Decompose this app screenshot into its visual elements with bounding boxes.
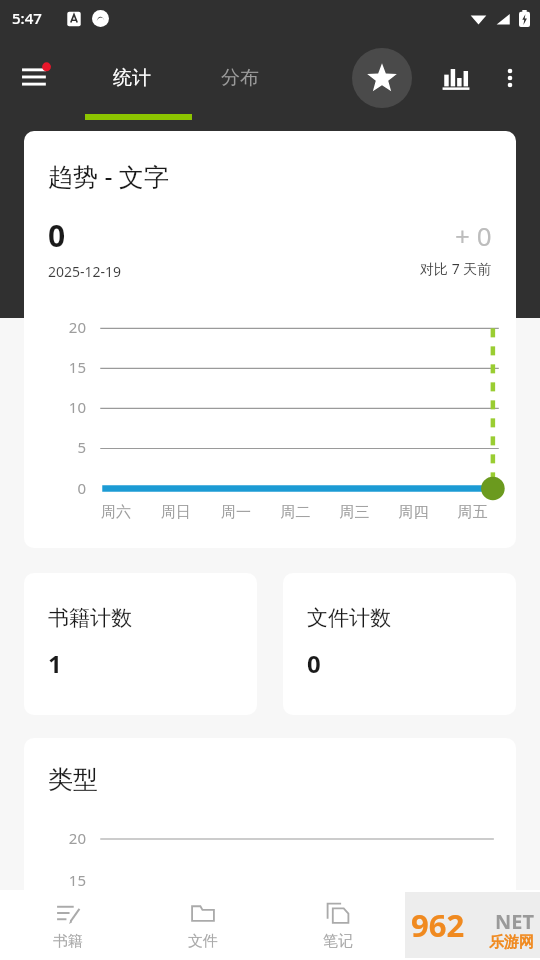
staticText: + 0 bbox=[455, 218, 492, 253]
button[interactable]: Favorites bbox=[352, 48, 412, 108]
staticText: 周三 bbox=[325, 503, 384, 522]
staticText: 类型 bbox=[48, 764, 98, 795]
staticText: 15 bbox=[24, 870, 86, 890]
staticText: 0 bbox=[24, 478, 86, 498]
button[interactable]: Open navigation menu bbox=[14, 55, 60, 101]
staticText: 2025-12-19 bbox=[48, 262, 122, 281]
button[interactable]: 分布 bbox=[186, 36, 294, 120]
staticText: 周日 bbox=[146, 503, 206, 522]
staticText: 分布 bbox=[221, 66, 259, 90]
staticText: 周五 bbox=[443, 503, 502, 522]
button[interactable]: 统计 bbox=[78, 36, 186, 120]
button[interactable]: 书籍 bbox=[0, 890, 135, 960]
staticText: 周二 bbox=[266, 503, 325, 522]
staticText: 0 bbox=[48, 215, 66, 256]
staticText: 书籍 bbox=[53, 932, 83, 951]
staticText: 0 bbox=[307, 647, 321, 680]
staticText: 文件 bbox=[188, 932, 218, 951]
staticText: 笔记 bbox=[323, 932, 353, 951]
button[interactable]: 类型 bbox=[24, 738, 516, 960]
staticText: 对比 7 天前 bbox=[420, 259, 492, 278]
staticText: 20 bbox=[24, 828, 86, 848]
staticText: 周一 bbox=[206, 503, 266, 522]
staticText: 周六 bbox=[86, 503, 146, 522]
button[interactable]: 文件计数 bbox=[283, 573, 516, 715]
button[interactable]: 趋势 - 文字 bbox=[24, 131, 516, 548]
staticText: 文件计数 bbox=[307, 605, 391, 631]
staticText: 5:47 bbox=[12, 8, 42, 28]
button[interactable]: 笔记 bbox=[270, 890, 405, 960]
button[interactable]: 书籍计数 bbox=[24, 573, 257, 715]
staticText: 20 bbox=[24, 317, 86, 337]
button[interactable]: More options bbox=[486, 54, 534, 102]
staticText: 10 bbox=[24, 397, 86, 417]
staticText: 962 bbox=[411, 904, 465, 946]
button[interactable]: Statistics chart bbox=[432, 54, 480, 102]
staticText: 15 bbox=[24, 357, 86, 377]
staticText: 乐游网 bbox=[489, 933, 534, 952]
staticText: 5 bbox=[24, 437, 86, 457]
button[interactable]: 文件 bbox=[135, 890, 270, 960]
staticText: 统计 bbox=[113, 66, 151, 90]
staticText: 趋势 - 文字 bbox=[48, 159, 170, 193]
staticText: 周四 bbox=[384, 503, 443, 522]
staticText: 1 bbox=[48, 647, 62, 680]
staticText: 书籍计数 bbox=[48, 605, 132, 631]
staticText: NET bbox=[495, 908, 534, 935]
